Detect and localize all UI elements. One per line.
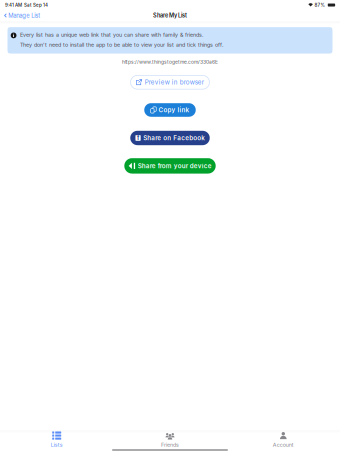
- staticText: https://www.thingstogetme.com/330a6E: [122, 59, 218, 65]
- staticText: 87%: [315, 2, 326, 8]
- staticText: Preview in browser: [145, 78, 204, 86]
- staticText: Copy link: [159, 106, 190, 114]
- staticText: Account: [273, 442, 294, 448]
- button[interactable]: Manage List: [0, 10, 43, 21]
- staticText: They don't need to install the app to be…: [20, 42, 224, 48]
- staticText: Share My List: [153, 12, 187, 19]
- button[interactable]: Friends: [113, 433, 227, 447]
- button[interactable]: Lists: [0, 433, 113, 447]
- button[interactable]: Copy link: [144, 103, 196, 117]
- staticText: Every list has a unique web link that yo…: [20, 31, 204, 38]
- staticText: Share from your device: [138, 162, 212, 170]
- staticText: Share on Facebook: [143, 134, 205, 142]
- button[interactable]: Share from your device: [124, 158, 216, 174]
- button[interactable]: Preview in browser: [131, 75, 209, 89]
- staticText: 9:41 AM Sat Sep 14: [5, 2, 48, 8]
- button[interactable]: Account: [227, 433, 340, 447]
- button[interactable]: f: [130, 131, 210, 145]
- staticText: f: [137, 134, 139, 141]
- staticText: Manage List: [8, 12, 40, 19]
- staticText: Friends: [161, 442, 179, 448]
- staticText: Lists: [51, 442, 63, 448]
